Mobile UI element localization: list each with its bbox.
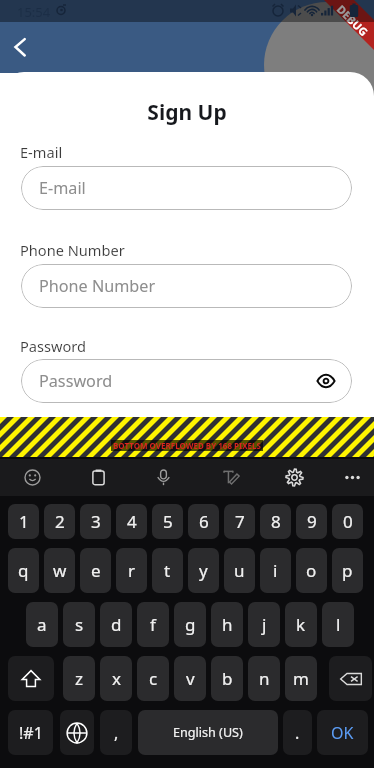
button[interactable]: y [188, 548, 219, 593]
button[interactable]: r [116, 548, 147, 593]
button[interactable]: f [137, 602, 169, 647]
button[interactable]: 4 [116, 504, 147, 539]
button[interactable]: 7 [224, 504, 255, 539]
button[interactable]: c [137, 656, 169, 701]
staticText: p [342, 559, 353, 582]
button[interactable]: Shift [8, 656, 54, 701]
staticText: a [37, 613, 47, 636]
staticText: w [53, 559, 67, 582]
staticText: r [128, 559, 136, 582]
button[interactable]: 2 [44, 504, 75, 539]
button[interactable]: u [224, 548, 255, 593]
button[interactable]: Back [1, 27, 41, 67]
button[interactable]: q [8, 548, 39, 593]
button[interactable]: s [63, 602, 95, 647]
button[interactable]: 3 [80, 504, 111, 539]
button[interactable]: 9 [296, 504, 327, 539]
staticText: i [273, 559, 278, 582]
button[interactable]: a [26, 602, 58, 647]
staticText: Phone Number [39, 275, 156, 297]
staticText: h [222, 613, 233, 636]
button[interactable]: p [332, 548, 363, 593]
button[interactable]: o [296, 548, 327, 593]
staticText: Password [20, 336, 87, 356]
staticText: E-mail [39, 177, 86, 199]
staticText: English (US) [173, 724, 243, 741]
staticText: Sign Up [0, 98, 374, 127]
staticText: !#1 [19, 722, 43, 744]
staticText: OK [331, 722, 354, 744]
button[interactable]: x [100, 656, 132, 701]
button[interactable]: t [152, 548, 183, 593]
staticText: m [293, 667, 309, 690]
staticText: 1 [19, 510, 29, 533]
button[interactable]: j [248, 602, 280, 647]
staticText: s [75, 613, 84, 636]
staticText: f [150, 613, 156, 636]
staticText: y [199, 559, 208, 582]
button[interactable]: Show password [313, 368, 339, 394]
staticText: BOTTOM OVERFLOWED BY 168 PIXELS [113, 440, 261, 451]
button[interactable]: OK [317, 710, 368, 755]
button[interactable]: 6 [188, 504, 219, 539]
button[interactable]: e [80, 548, 111, 593]
staticText: 5 [163, 510, 173, 533]
staticText: x [112, 667, 121, 690]
staticText: b [222, 667, 233, 690]
button[interactable]: Handwriting [214, 460, 248, 495]
button[interactable]: More options [335, 460, 369, 495]
staticText: j [262, 613, 267, 636]
button[interactable]: 8 [260, 504, 291, 539]
staticText: u [234, 559, 245, 582]
button[interactable]: 5 [152, 504, 183, 539]
button[interactable]: Voice input [146, 460, 180, 495]
staticText: Password [39, 370, 113, 392]
staticText: 8 [271, 510, 281, 533]
staticText: t [164, 559, 171, 582]
button[interactable]: E-mail [21, 166, 352, 210]
button[interactable]: 0 [332, 504, 363, 539]
button[interactable]: 1 [8, 504, 39, 539]
button[interactable]: z [63, 656, 95, 701]
button[interactable]: d [100, 602, 132, 647]
button[interactable]: v [174, 656, 206, 701]
staticText: v [186, 667, 195, 690]
button[interactable]: !#1 [8, 710, 53, 755]
staticText: 9 [307, 510, 317, 533]
button[interactable]: k [285, 602, 317, 647]
button[interactable]: . [283, 710, 312, 755]
staticText: Phone Number [20, 240, 125, 260]
button[interactable]: n [248, 656, 280, 701]
button[interactable]: Clipboard [81, 460, 115, 495]
button[interactable]: h [211, 602, 243, 647]
button[interactable]: English (US) [138, 710, 278, 755]
staticText: 4 [127, 510, 137, 533]
button[interactable]: b [211, 656, 243, 701]
staticText: g [185, 613, 196, 636]
staticText: 2 [55, 510, 65, 533]
staticText: 0 [343, 510, 353, 533]
staticText: d [111, 613, 122, 636]
staticText: 7 [235, 510, 245, 533]
staticText: c [149, 667, 158, 690]
button[interactable]: Password [21, 359, 352, 403]
button[interactable]: l [322, 602, 354, 647]
button[interactable]: , [100, 710, 132, 755]
staticText: n [259, 667, 270, 690]
staticText: , [114, 722, 119, 744]
staticText: e [91, 559, 101, 582]
staticText: l [336, 613, 341, 636]
staticText: z [75, 667, 83, 690]
button[interactable]: Phone Number [21, 264, 352, 308]
staticText: o [306, 559, 317, 582]
button[interactable]: m [285, 656, 317, 701]
button[interactable]: w [44, 548, 75, 593]
button[interactable]: Emoji [15, 460, 49, 495]
button[interactable]: Change keyboard language [60, 710, 94, 755]
button[interactable]: Settings [277, 460, 311, 495]
button[interactable]: g [174, 602, 206, 647]
button[interactable]: i [260, 548, 291, 593]
staticText: k [296, 613, 306, 636]
button[interactable]: Backspace [329, 656, 372, 701]
